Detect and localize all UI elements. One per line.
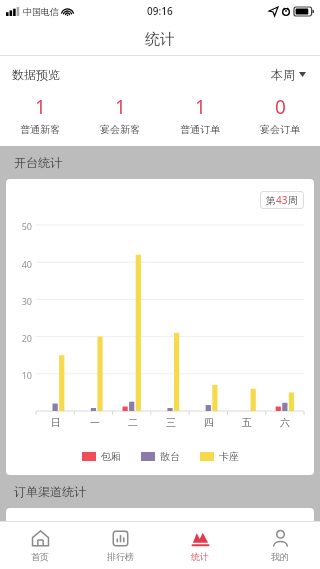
staticText: 第 [266, 194, 276, 207]
button[interactable]: 包厢 [82, 450, 121, 463]
staticText: 20 [21, 332, 32, 344]
staticText: 二 [128, 416, 138, 429]
staticText: 普通订单 [180, 123, 220, 136]
staticText: 30 [21, 295, 32, 307]
staticText: 10 [21, 369, 32, 381]
staticText: 中国电信 [23, 6, 59, 17]
staticText: 宴会订单 [260, 123, 300, 136]
staticText: 0 [275, 94, 286, 120]
staticText: 本周 [271, 67, 295, 82]
staticText: 统计 [191, 551, 209, 562]
staticText: 43 [276, 193, 288, 207]
staticText: 普通新客 [20, 123, 60, 136]
staticText: 五 [242, 416, 252, 429]
button[interactable]: 散台 [141, 450, 180, 463]
staticText: 周 [288, 194, 298, 207]
staticText: 宴会新客 [100, 123, 140, 136]
staticText: 首页 [31, 551, 49, 562]
staticText: 日 [51, 416, 61, 429]
staticText: 三 [166, 416, 176, 429]
button[interactable]: 排行榜 [80, 522, 160, 569]
button[interactable]: 卡座 [200, 450, 239, 463]
staticText: 50 [21, 220, 32, 232]
staticText: 1 [35, 94, 46, 120]
staticText: 1 [115, 94, 126, 120]
button[interactable]: 本周 [269, 65, 308, 84]
button[interactable]: 1 [0, 94, 80, 136]
staticText: 统计 [145, 30, 175, 49]
button[interactable]: 0 [240, 94, 320, 136]
button[interactable]: 统计 [160, 522, 240, 569]
button[interactable]: 1 [80, 94, 160, 136]
staticText: 40 [21, 258, 32, 270]
staticText: 六 [280, 416, 290, 429]
staticText: 数据预览 [12, 67, 60, 82]
staticText: 我的 [271, 551, 289, 562]
staticText: 包厢 [101, 450, 121, 463]
staticText: 排行榜 [107, 551, 134, 562]
button[interactable]: 首页 [0, 522, 80, 569]
button[interactable]: 1 [160, 94, 240, 136]
staticText: 四 [204, 416, 214, 429]
staticText: 09:16 [147, 4, 173, 18]
staticText: 卡座 [219, 450, 239, 463]
staticText: 开台统计 [14, 155, 62, 170]
staticText: 订单渠道统计 [14, 484, 86, 499]
staticText: 1 [195, 94, 206, 120]
button[interactable]: 我的 [240, 522, 320, 569]
staticText: 一 [90, 416, 100, 429]
staticText: 散台 [160, 450, 180, 463]
